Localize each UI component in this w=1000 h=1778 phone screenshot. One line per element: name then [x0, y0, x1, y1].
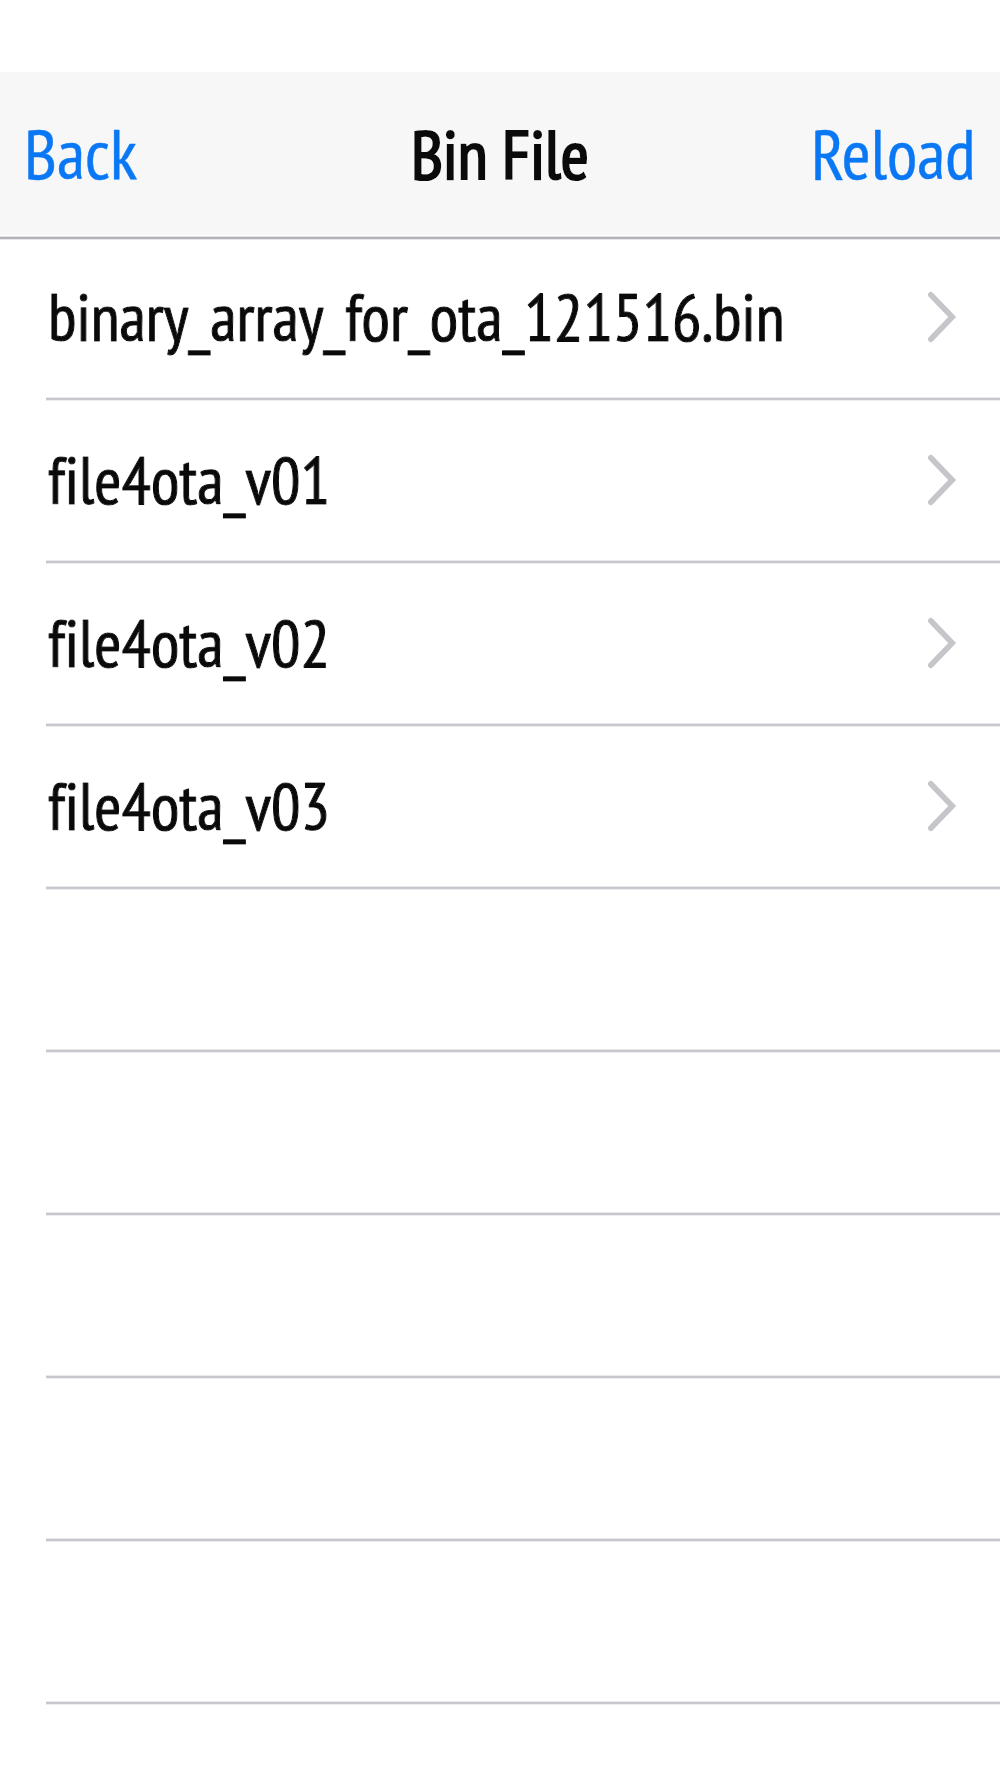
button[interactable]: Back: [10, 86, 152, 221]
other: Open item: [928, 455, 955, 505]
other: Open item: [928, 781, 955, 831]
other: Open item: [928, 292, 955, 342]
staticText: Back: [24, 108, 138, 199]
staticText: file4ota_v03: [48, 763, 330, 848]
button[interactable]: binary_array_for_ota_121516.bin: [0, 238, 1000, 397]
staticText: Reload: [811, 108, 976, 199]
other: Open item: [928, 618, 955, 668]
button[interactable]: file4ota_v02: [0, 564, 1000, 723]
staticText: file4ota_v02: [48, 600, 330, 685]
staticText: file4ota_v01: [48, 437, 330, 522]
staticText: file4ota_v02: [48, 600, 330, 685]
button[interactable]: file4ota_v01: [0, 401, 1000, 560]
staticText: Reload: [811, 108, 976, 199]
button[interactable]: Reload: [797, 86, 990, 221]
staticText: binary_array_for_ota_121516.bin: [48, 274, 785, 359]
staticText: binary_array_for_ota_121516.bin: [48, 274, 785, 359]
button[interactable]: file4ota_v03: [0, 727, 1000, 886]
staticText: Back: [24, 108, 138, 199]
staticText: file4ota_v01: [48, 437, 330, 522]
staticText: file4ota_v03: [48, 763, 330, 848]
staticText: Bin File: [411, 110, 589, 198]
